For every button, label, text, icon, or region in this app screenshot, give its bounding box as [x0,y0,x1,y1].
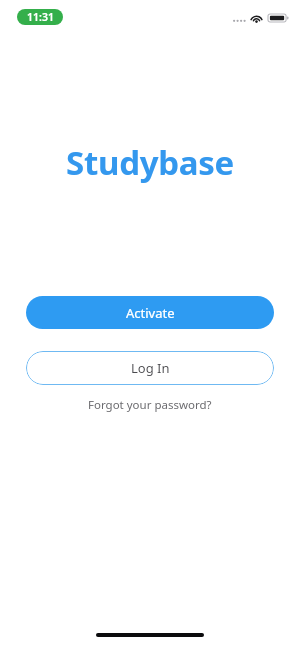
staticText: Activate [126,304,175,322]
staticText: Forgot your password? [88,397,212,413]
staticText: 11:31 [27,10,54,24]
button[interactable]: Log In [26,351,274,385]
button[interactable]: Forgot your password? [82,394,218,416]
staticText: Studybase [0,140,300,185]
staticText: Log In [131,359,170,377]
button[interactable]: Activate [26,296,274,329]
